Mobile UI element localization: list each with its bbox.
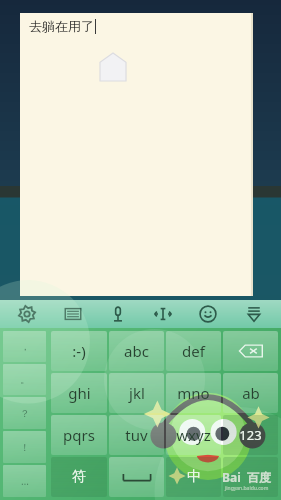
staticText: ？ bbox=[20, 407, 30, 420]
staticText: ghi bbox=[68, 383, 91, 403]
button[interactable]: 。 bbox=[3, 364, 46, 395]
button[interactable]: ghi bbox=[51, 373, 107, 413]
staticText: 符 bbox=[72, 468, 86, 486]
button[interactable]: Move cursor bbox=[145, 300, 181, 328]
button[interactable]: 中 bbox=[166, 457, 221, 497]
staticText: 去躺在用了 bbox=[29, 18, 94, 34]
button[interactable]: mno bbox=[166, 373, 221, 413]
staticText: pqrs bbox=[63, 425, 95, 445]
staticText: def bbox=[182, 341, 205, 361]
button[interactable]: wxyz bbox=[166, 415, 221, 455]
button[interactable]: 符 bbox=[51, 457, 107, 497]
staticText: ab bbox=[242, 383, 260, 403]
button[interactable]: Keyboard layout bbox=[55, 300, 91, 328]
button[interactable]: jkl bbox=[109, 373, 164, 413]
button[interactable]: :-) bbox=[51, 331, 107, 371]
staticText: :-) bbox=[72, 341, 86, 361]
button[interactable]: tuv bbox=[109, 415, 164, 455]
button[interactable]: pqrs bbox=[51, 415, 107, 455]
button[interactable]: 123 bbox=[223, 415, 278, 455]
staticText: tuv bbox=[125, 425, 148, 445]
staticText: ， bbox=[20, 340, 30, 353]
button[interactable]: Settings bbox=[9, 300, 45, 328]
staticText: 123 bbox=[239, 426, 262, 444]
staticText: mno bbox=[177, 383, 210, 403]
staticText: Bai 百度 bbox=[222, 469, 271, 485]
button[interactable]: … bbox=[3, 465, 46, 497]
button[interactable]: Emoji bbox=[190, 300, 226, 328]
button[interactable]: Space bbox=[109, 457, 164, 497]
staticText: jingyan.baidu.com bbox=[225, 485, 269, 492]
staticText: abc bbox=[124, 341, 149, 361]
button[interactable]: Enter bbox=[223, 457, 278, 497]
button[interactable]: Voice input bbox=[100, 300, 136, 328]
button[interactable]: abc bbox=[109, 331, 164, 371]
button[interactable]: 去躺在用了 bbox=[20, 13, 253, 296]
staticText: … bbox=[21, 474, 29, 488]
button[interactable]: ！ bbox=[3, 431, 46, 463]
staticText: ！ bbox=[20, 441, 30, 454]
staticText: wxyz bbox=[176, 425, 211, 445]
button[interactable]: ab bbox=[223, 373, 278, 413]
button[interactable]: def bbox=[166, 331, 221, 371]
button[interactable]: Delete bbox=[223, 331, 278, 371]
button[interactable]: ？ bbox=[3, 397, 46, 429]
staticText: jkl bbox=[129, 383, 145, 403]
staticText: 中 bbox=[187, 468, 201, 486]
button[interactable]: ， bbox=[3, 331, 46, 362]
staticText: 。 bbox=[20, 373, 30, 386]
button[interactable]: Hide keyboard bbox=[236, 300, 272, 328]
